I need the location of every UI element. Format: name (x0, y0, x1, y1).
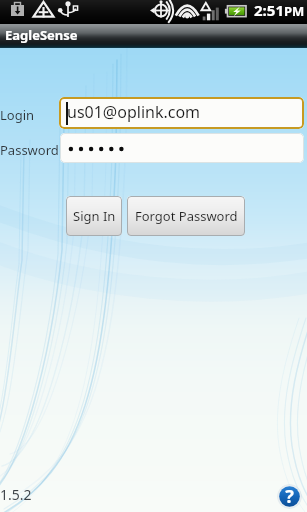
staticText: ? (277, 484, 302, 509)
button[interactable]: Forgot Password (127, 196, 245, 236)
staticText: 1.5.2 (0, 485, 32, 504)
button[interactable]: us01@oplink.com (59, 97, 304, 129)
staticText: Sign In (73, 207, 116, 225)
staticText: 2:51 (254, 0, 284, 20)
staticText: Forgot Password (135, 207, 238, 225)
staticText: PM (284, 2, 305, 20)
staticText: EagleSense (5, 26, 78, 44)
staticText: Password (0, 141, 59, 159)
staticText: Login (0, 106, 35, 124)
button[interactable] (60, 133, 304, 163)
button[interactable]: Sign In (66, 196, 122, 236)
staticText: us01@oplink.com (67, 101, 201, 123)
button[interactable]: Help (277, 484, 302, 509)
